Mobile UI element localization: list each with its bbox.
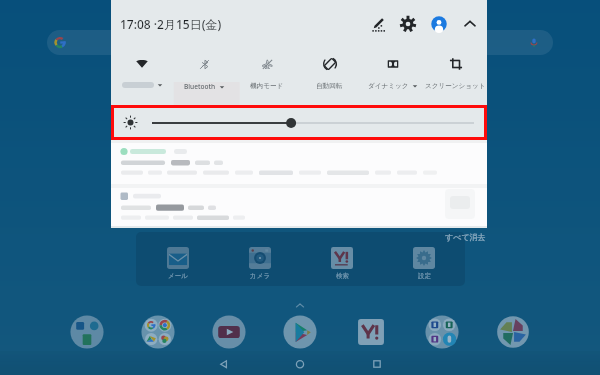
button[interactable]: すべて消去 xyxy=(445,232,486,242)
button[interactable]: 機内モード xyxy=(235,48,298,105)
button[interactable]: Google search xyxy=(47,30,553,55)
button[interactable]: App 5 xyxy=(424,314,460,350)
button[interactable] xyxy=(111,188,487,226)
button[interactable]: App 2 xyxy=(211,314,247,350)
staticText: カメラ xyxy=(250,272,270,280)
staticText: スクリーンショット xyxy=(425,82,486,90)
staticText: ダイナミック xyxy=(368,82,409,90)
staticText: Bluetooth xyxy=(184,82,216,91)
staticText: 検索 xyxy=(336,272,349,280)
button[interactable]: Edit xyxy=(368,15,386,33)
staticText: 自動回転 xyxy=(316,82,343,90)
button[interactable]: User xyxy=(430,15,448,33)
button[interactable]: App 4 xyxy=(353,314,389,350)
button[interactable]: 自動回転 xyxy=(298,48,361,105)
button[interactable]: Recents xyxy=(367,354,387,374)
button[interactable]: App 0 xyxy=(69,314,105,350)
staticText: 17:08 ·2月15日(金) xyxy=(120,16,222,32)
button[interactable]: メール xyxy=(166,247,190,280)
button[interactable]: Back xyxy=(214,354,234,374)
button[interactable]: App 1 xyxy=(140,314,176,350)
button[interactable]: カメラ xyxy=(248,247,272,280)
button[interactable]: App 3 xyxy=(282,314,318,350)
staticText: 設定 xyxy=(418,272,431,280)
button[interactable]: Collapse xyxy=(461,15,479,33)
staticText: メール xyxy=(168,272,188,280)
button[interactable]: Settings xyxy=(399,15,417,33)
button[interactable]: Home xyxy=(290,354,310,374)
button[interactable] xyxy=(111,48,173,105)
button[interactable]: Bluetooth xyxy=(173,48,235,105)
button[interactable]: スクリーンショット xyxy=(424,48,487,105)
button[interactable]: App 6 xyxy=(495,314,531,350)
button[interactable] xyxy=(111,143,487,184)
button[interactable]: ダイナミック xyxy=(361,48,424,105)
button[interactable]: 設定 xyxy=(412,247,436,280)
button[interactable]: 検索 xyxy=(330,247,354,280)
staticText: 機内モード xyxy=(250,82,284,90)
